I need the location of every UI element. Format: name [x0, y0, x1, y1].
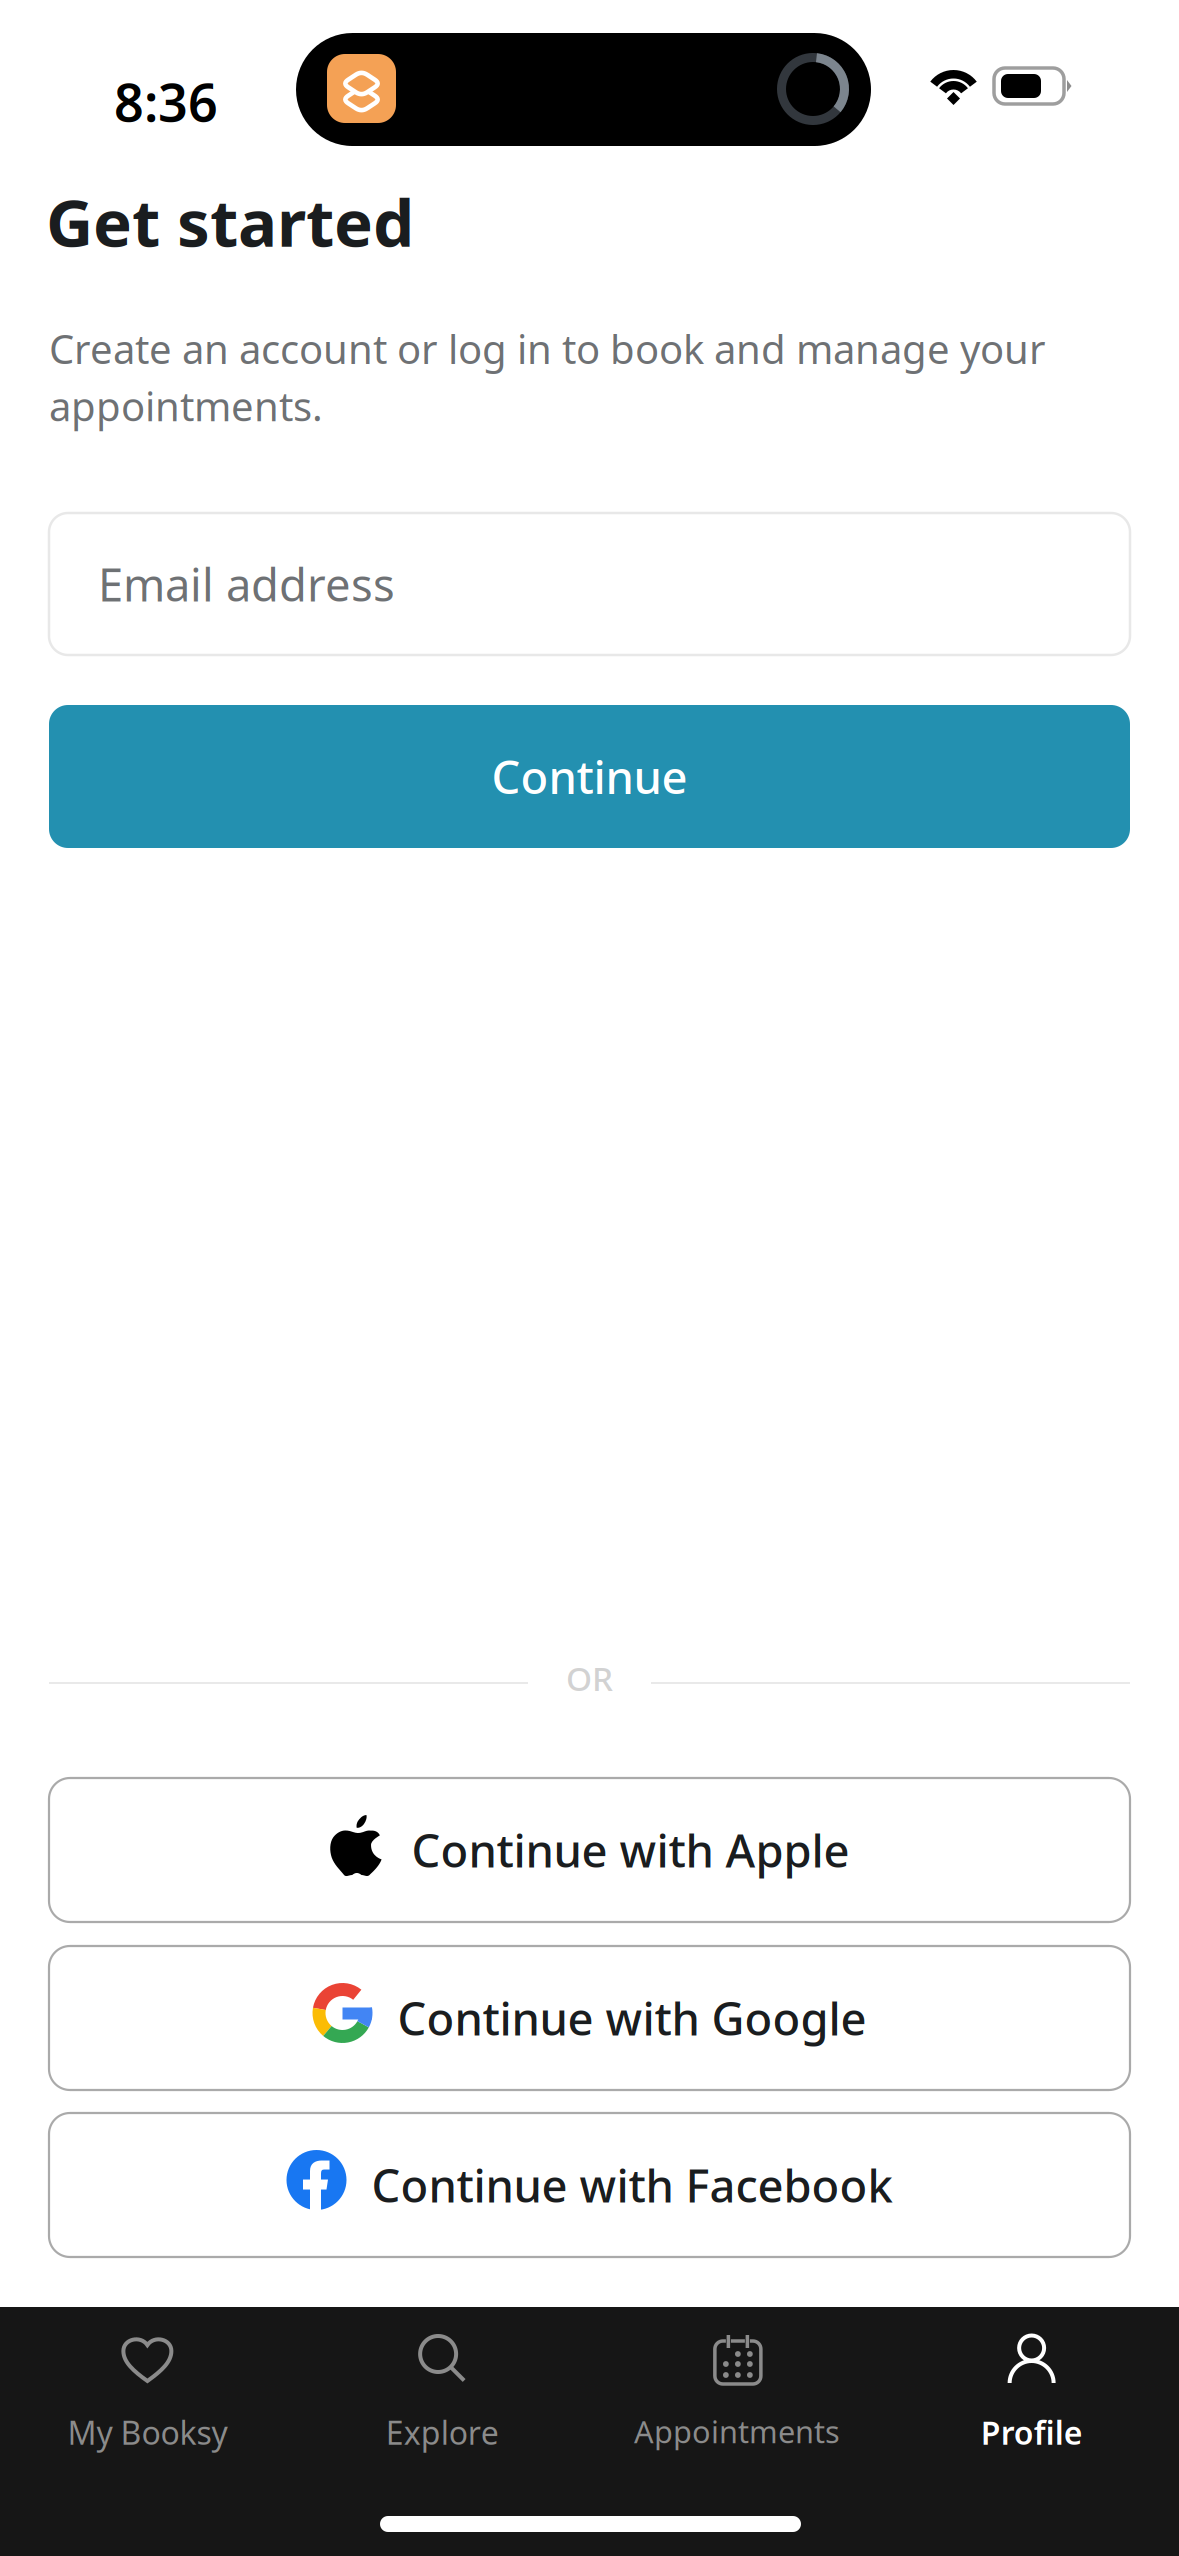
- button[interactable]: Continue with Facebook: [49, 2113, 1130, 2257]
- button[interactable]: My Booksy: [0, 2307, 295, 2457]
- staticText: Continue with Google: [397, 1988, 866, 2048]
- button[interactable]: Appointments: [589, 2307, 884, 2457]
- staticText: Get started: [46, 178, 414, 265]
- button[interactable]: Explore: [295, 2307, 590, 2457]
- staticText: Continue: [491, 746, 687, 807]
- button[interactable]: Continue with Google: [49, 1946, 1130, 2090]
- staticText: 8:36: [114, 67, 218, 136]
- staticText: Create an account or log in to book and …: [49, 322, 1046, 432]
- button[interactable]: Email address: [49, 513, 1130, 655]
- staticText: My Booksy: [67, 2411, 227, 2453]
- staticText: OR: [566, 1656, 613, 1700]
- button[interactable]: Continue: [49, 705, 1130, 848]
- button[interactable]: Profile: [884, 2307, 1179, 2457]
- staticText: Email address: [98, 554, 395, 614]
- staticText: Appointments: [634, 2411, 840, 2452]
- staticText: Continue with Apple: [411, 1820, 849, 1880]
- button[interactable]: Continue with Apple: [49, 1778, 1130, 1922]
- staticText: Continue with Facebook: [371, 2155, 892, 2215]
- staticText: Profile: [981, 2411, 1083, 2453]
- staticText: Explore: [386, 2411, 499, 2453]
